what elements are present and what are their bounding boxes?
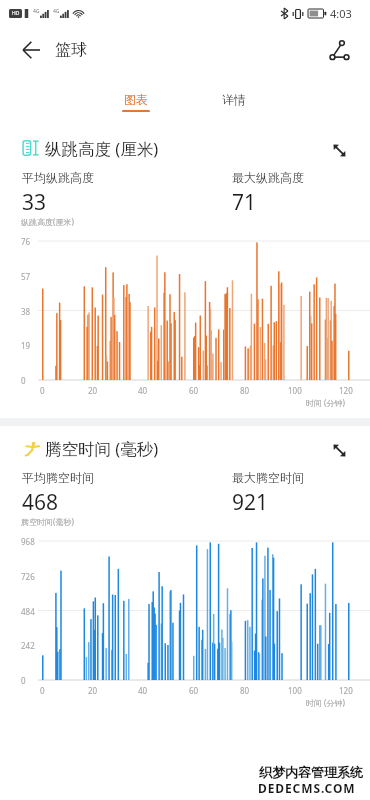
staticText: 时间 (分钟)	[306, 697, 345, 708]
staticText: 4G	[33, 8, 40, 15]
staticText: 100	[288, 685, 302, 696]
staticText: 38	[21, 306, 31, 317]
staticText: 纵跳高度 (厘米)	[45, 137, 159, 160]
staticText: 921	[232, 488, 269, 517]
staticText: 20	[88, 385, 98, 396]
button[interactable]: 图表	[96, 74, 176, 118]
staticText: 4G	[53, 8, 60, 15]
staticText: 76	[21, 236, 31, 247]
staticText: 图表	[124, 92, 148, 107]
staticText: 0	[40, 385, 45, 396]
staticText: 4:03	[330, 6, 352, 21]
staticText: 织梦内容管理系统	[259, 764, 363, 780]
staticText: 468	[22, 488, 59, 517]
staticText: 120	[339, 685, 353, 696]
staticText: 100	[288, 385, 302, 396]
staticText: 484	[21, 606, 35, 617]
staticText: 纵跳高度(厘米)	[21, 216, 74, 227]
button[interactable]: Share	[320, 31, 358, 69]
staticText: 60	[189, 385, 199, 396]
staticText: HD	[12, 10, 20, 17]
button[interactable]: Expand chart	[326, 437, 352, 463]
staticText: 平均纵跳高度	[22, 170, 94, 185]
staticText: 最大腾空时间	[232, 470, 304, 485]
staticText: 80	[240, 385, 250, 396]
staticText: 篮球	[55, 40, 87, 60]
staticText: 0	[21, 375, 26, 386]
staticText: DEDECMS.COM	[258, 780, 356, 796]
staticText: 19	[21, 340, 31, 351]
staticText: 腾空时间 (毫秒)	[45, 437, 159, 460]
staticText: 0	[40, 685, 45, 696]
staticText: 120	[339, 385, 353, 396]
staticText: 242	[21, 640, 35, 651]
staticText: 968	[21, 536, 35, 547]
staticText: 60	[189, 685, 199, 696]
staticText: 40	[138, 385, 148, 396]
staticText: 57	[21, 271, 31, 282]
staticText: 腾空时间(毫秒)	[21, 516, 74, 527]
staticText: 最大纵跳高度	[232, 170, 304, 185]
staticText: 71	[232, 188, 257, 217]
button[interactable]: Expand chart	[326, 137, 352, 163]
staticText: 80	[240, 685, 250, 696]
button[interactable]: 详情	[194, 74, 274, 118]
staticText: 726	[21, 571, 35, 582]
staticText: 时间 (分钟)	[306, 397, 345, 408]
staticText: 33	[22, 188, 47, 217]
staticText: 详情	[222, 92, 246, 107]
button[interactable]: Back	[12, 31, 50, 69]
staticText: 20	[88, 685, 98, 696]
staticText: 0	[21, 675, 26, 686]
staticText: 平均腾空时间	[22, 470, 94, 485]
staticText: 40	[138, 685, 148, 696]
